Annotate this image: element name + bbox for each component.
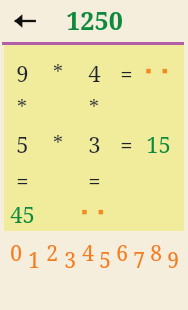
staticText: 9: [16, 58, 29, 82]
staticText: 5: [16, 129, 29, 153]
staticText: 6: [116, 239, 128, 268]
button[interactable]: 0: [7, 231, 25, 277]
staticText: 45: [10, 199, 35, 223]
button[interactable]: 7: [130, 231, 147, 277]
button[interactable]: 5: [96, 231, 113, 277]
staticText: =: [16, 165, 29, 189]
staticText: =: [120, 58, 133, 82]
staticText: 5: [99, 246, 111, 275]
staticText: 1250: [66, 3, 123, 37]
staticText: 1: [28, 246, 40, 275]
staticText: 4: [82, 239, 94, 268]
staticText: 15: [146, 129, 171, 153]
staticText: 3: [64, 246, 76, 275]
button[interactable]: 3: [61, 231, 79, 277]
staticText: 3: [88, 129, 101, 153]
staticText: 9: [167, 246, 179, 275]
staticText: =: [120, 129, 133, 153]
button[interactable]: 6: [113, 231, 130, 277]
staticText: 0: [10, 239, 22, 268]
staticText: *: [53, 129, 63, 153]
staticText: *: [53, 58, 63, 82]
staticText: 7: [133, 246, 145, 275]
button[interactable]: 8: [147, 231, 164, 277]
button[interactable]: Back: [8, 6, 42, 36]
staticText: *: [17, 93, 27, 117]
button[interactable]: 9: [164, 231, 181, 277]
staticText: =: [88, 165, 101, 189]
staticText: *: [89, 93, 99, 117]
staticText: 2: [46, 239, 58, 268]
button[interactable]: 1: [25, 231, 43, 277]
staticText: 4: [88, 58, 101, 82]
button[interactable]: 2: [43, 231, 61, 277]
button[interactable]: 4: [79, 231, 96, 277]
staticText: 8: [150, 239, 162, 268]
